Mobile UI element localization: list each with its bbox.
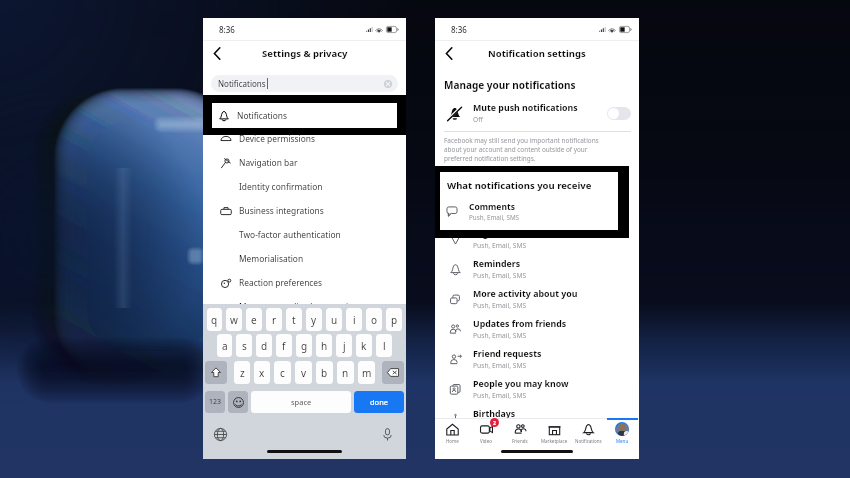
button[interactable]: Friends xyxy=(503,418,537,450)
button[interactable]: Notifications xyxy=(203,102,406,126)
button[interactable] xyxy=(382,361,404,384)
button[interactable]: d xyxy=(256,334,272,357)
button[interactable]: More activity about you xyxy=(435,284,639,314)
button[interactable]: n xyxy=(337,361,354,384)
staticText: Birthdays xyxy=(473,408,516,420)
button[interactable]: Notifications xyxy=(211,75,398,92)
button[interactable]: Video xyxy=(469,418,503,450)
button[interactable]: r xyxy=(266,308,282,331)
button[interactable]: Two-factor authentication xyxy=(203,222,406,246)
button[interactable]: Friend requests xyxy=(435,344,639,374)
button[interactable]: Tags xyxy=(435,224,639,254)
staticText: v xyxy=(301,366,307,380)
staticText: i xyxy=(353,313,356,327)
button[interactable]: m xyxy=(358,361,375,384)
button[interactable]: Mute push notifications toggle xyxy=(607,107,631,120)
staticText: Push, Email, SMS xyxy=(473,271,527,280)
button[interactable] xyxy=(228,391,248,413)
button[interactable]: Comments xyxy=(435,194,639,224)
staticText: Identity confirmation xyxy=(239,181,323,192)
staticText: Push, Email, SMS xyxy=(473,331,527,340)
staticText: Manage your notifications xyxy=(444,78,576,92)
button[interactable]: space xyxy=(251,391,351,413)
staticText: y xyxy=(311,313,317,327)
staticText: w xyxy=(230,313,238,327)
staticText: Memorialisation xyxy=(239,253,304,264)
button[interactable]: Navigation bar xyxy=(203,150,406,174)
button[interactable]: Back xyxy=(207,43,227,63)
staticText: n xyxy=(342,366,349,380)
button[interactable]: More personalised suggestions xyxy=(203,294,406,318)
button[interactable]: Menu xyxy=(605,418,639,450)
button[interactable]: Identity confirmation xyxy=(203,174,406,198)
button[interactable]: i xyxy=(346,308,362,331)
button[interactable]: Change keyboard language xyxy=(212,426,229,443)
staticText: Settings & privacy xyxy=(262,47,348,60)
staticText: What notifications you receive xyxy=(447,179,592,192)
button[interactable]: c xyxy=(274,361,291,384)
button[interactable]: j xyxy=(336,334,352,357)
button[interactable]: Reminders xyxy=(435,254,639,284)
staticText: z xyxy=(240,366,245,380)
button[interactable]: l xyxy=(376,334,392,357)
staticText: Comments xyxy=(469,201,515,213)
staticText: h xyxy=(321,339,328,353)
button[interactable]: h xyxy=(316,334,332,357)
button[interactable]: Birthdays xyxy=(435,404,639,434)
button[interactable]: k xyxy=(356,334,372,357)
button[interactable]: s xyxy=(236,334,252,357)
staticText: Navigation bar xyxy=(239,157,298,168)
button[interactable]: e xyxy=(246,308,262,331)
button[interactable]: p xyxy=(386,308,402,331)
button[interactable]: q xyxy=(207,308,222,331)
staticText: c xyxy=(280,366,285,380)
button[interactable]: y xyxy=(306,308,322,331)
button[interactable]: u xyxy=(326,308,342,331)
staticText: d xyxy=(261,339,268,353)
staticText: Facebook may still send you important no… xyxy=(444,136,630,163)
staticText: Push, Email, SMS xyxy=(473,391,527,400)
button[interactable]: t xyxy=(286,308,302,331)
button[interactable]: x xyxy=(254,361,270,384)
button[interactable]: 123 xyxy=(205,391,225,413)
button[interactable]: z xyxy=(234,361,250,384)
button[interactable]: What notifications you receive xyxy=(435,166,629,238)
staticText: Comments xyxy=(473,198,521,210)
button[interactable]: People you may know xyxy=(435,374,639,404)
button[interactable]: Marketplace xyxy=(537,418,571,450)
button[interactable]: Mute push notifications xyxy=(435,99,639,127)
button[interactable]: Back xyxy=(439,43,459,63)
staticText: o xyxy=(371,313,378,327)
button[interactable]: w xyxy=(226,308,242,331)
button[interactable]: f xyxy=(276,334,292,357)
staticText: Notification settings xyxy=(488,47,586,60)
button[interactable] xyxy=(205,361,227,384)
button[interactable]: Business integrations xyxy=(203,198,406,222)
button[interactable]: b xyxy=(316,361,333,384)
button[interactable]: o xyxy=(366,308,382,331)
staticText: j xyxy=(343,339,346,353)
staticText: Push, Email, SMS xyxy=(469,213,520,222)
button[interactable]: Reaction preferences xyxy=(203,270,406,294)
button[interactable]: Notifications xyxy=(571,418,605,450)
button[interactable]: Notifications xyxy=(203,95,406,135)
button[interactable]: Home xyxy=(435,418,469,450)
staticText: 8:36 xyxy=(451,24,467,35)
staticText: Updates from friends xyxy=(473,318,567,330)
button[interactable]: Device permissions xyxy=(203,126,406,150)
staticText: q xyxy=(211,313,218,327)
staticText: m xyxy=(362,366,372,380)
staticText: Friend requests xyxy=(473,348,542,360)
button[interactable]: g xyxy=(296,334,312,357)
staticText: Home xyxy=(446,438,459,444)
button[interactable]: v xyxy=(295,361,312,384)
button[interactable]: Memorialisation xyxy=(203,246,406,270)
staticText: Menu xyxy=(616,438,629,444)
staticText: k xyxy=(361,339,367,353)
staticText: space xyxy=(291,397,312,407)
button[interactable]: Updates from friends xyxy=(435,314,639,344)
button[interactable]: a xyxy=(217,334,232,357)
staticText: Push, Email, SMS xyxy=(473,301,527,310)
button[interactable]: Voice input xyxy=(379,426,396,443)
button[interactable]: done xyxy=(354,391,404,413)
